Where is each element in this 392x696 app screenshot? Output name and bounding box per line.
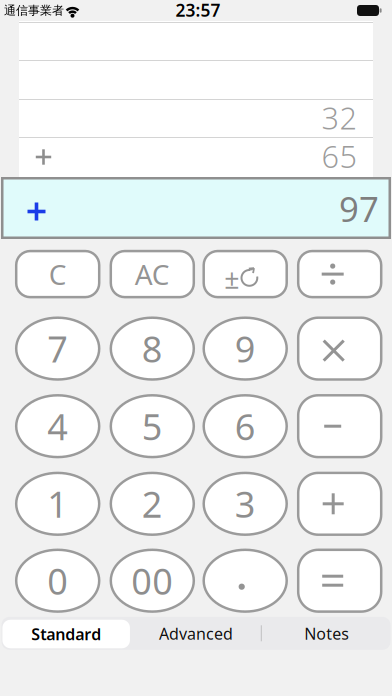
button[interactable]: C xyxy=(15,250,100,298)
staticText: 8 xyxy=(142,325,163,372)
button[interactable]: 0 xyxy=(15,549,100,613)
staticText: 3 xyxy=(235,480,256,528)
staticText: AC xyxy=(135,255,170,293)
staticText: Standard xyxy=(31,623,101,645)
button[interactable]: 5 xyxy=(110,394,195,458)
button[interactable]: 8 xyxy=(110,316,195,381)
button[interactable]: 00 xyxy=(110,549,195,613)
staticText: 5 xyxy=(142,402,163,450)
staticText: 0 xyxy=(47,557,68,605)
button[interactable] xyxy=(297,472,382,536)
staticText: 2 xyxy=(142,480,163,528)
button[interactable]: 6 xyxy=(202,394,288,458)
staticText: 9 xyxy=(235,325,256,372)
staticText: ± xyxy=(224,261,239,296)
staticText: 6 xyxy=(235,402,256,450)
staticText: 4 xyxy=(47,402,68,450)
button[interactable]: 1 xyxy=(15,472,100,536)
button[interactable] xyxy=(297,394,382,458)
button[interactable]: 9 xyxy=(202,316,288,381)
button[interactable]: 4 xyxy=(15,394,100,458)
button[interactable]: 2 xyxy=(110,472,195,536)
staticText: Notes xyxy=(304,623,349,644)
button[interactable]: ± xyxy=(202,250,288,298)
button[interactable] xyxy=(297,316,382,381)
button[interactable]: 3 xyxy=(202,472,288,536)
button[interactable] xyxy=(297,250,382,298)
staticText: 65 xyxy=(321,136,357,176)
staticText: C xyxy=(49,255,67,293)
staticText: 7 xyxy=(47,325,68,372)
button[interactable]: Advanced xyxy=(136,619,256,647)
staticText: Advanced xyxy=(159,623,233,644)
staticText: 00 xyxy=(131,557,173,605)
staticText: 23:57 xyxy=(175,0,220,21)
staticText: 1 xyxy=(47,480,68,528)
staticText: 32 xyxy=(321,97,357,138)
button[interactable] xyxy=(202,549,288,613)
button[interactable]: Standard xyxy=(2,620,130,648)
staticText: 97 xyxy=(339,185,379,231)
button[interactable]: AC xyxy=(110,250,195,298)
button[interactable]: Notes xyxy=(267,619,387,647)
button[interactable]: 7 xyxy=(15,316,100,381)
staticText: 通信事業者 xyxy=(4,3,64,18)
button[interactable] xyxy=(297,549,382,613)
